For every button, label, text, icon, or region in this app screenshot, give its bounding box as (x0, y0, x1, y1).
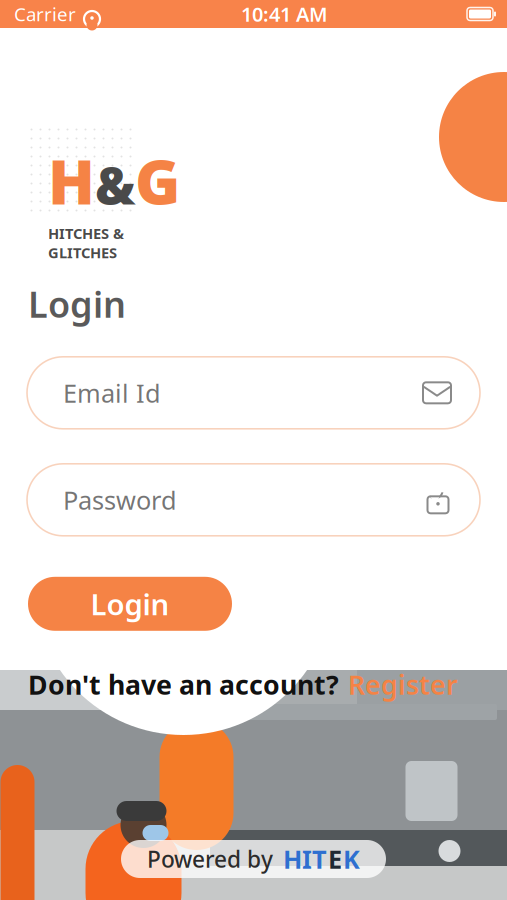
staticText: Login (28, 280, 126, 328)
staticText: HIT (283, 842, 327, 876)
staticText: Email Id (63, 376, 161, 410)
staticText: G (135, 140, 180, 221)
button[interactable]: Login (28, 577, 232, 631)
staticText: Login (90, 584, 169, 623)
staticText: H (48, 140, 95, 221)
staticText: Carrier (14, 2, 76, 26)
staticText: K (343, 842, 360, 876)
staticText: Powered by (147, 844, 273, 874)
staticText: & (95, 151, 135, 218)
staticText: E (328, 842, 342, 876)
staticText: 10:41 AM (241, 1, 328, 27)
staticText: Don't have an account? (28, 667, 339, 702)
staticText: Register (348, 667, 458, 702)
staticText: HITCHES & GLITCHES (48, 223, 124, 262)
button[interactable]: Register (348, 667, 458, 702)
staticText: Password (63, 483, 177, 517)
